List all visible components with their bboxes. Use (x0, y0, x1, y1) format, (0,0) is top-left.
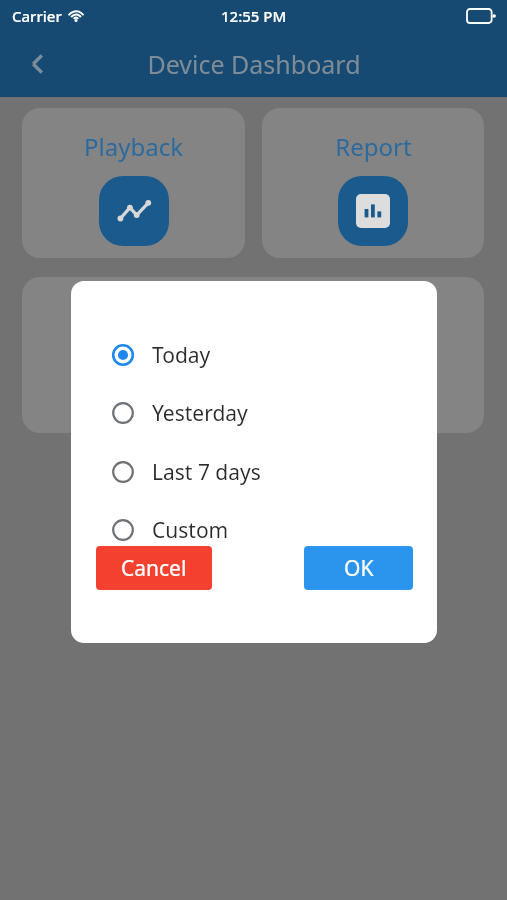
button[interactable]: Back (16, 42, 60, 86)
button[interactable]: OK (304, 546, 413, 590)
staticText: Device Dashboard (147, 47, 361, 81)
staticText: Last 7 days (152, 458, 261, 487)
button[interactable]: Last 7 days (71, 450, 437, 494)
other: Playback (117, 194, 151, 228)
button[interactable] (22, 277, 484, 433)
other: Report (356, 194, 390, 228)
staticText: Carrier (12, 6, 62, 26)
staticText: Today (152, 341, 211, 370)
staticText: 12:55 PM (221, 6, 287, 26)
staticText: OK (344, 554, 374, 583)
staticText: Yesterday (152, 399, 248, 428)
staticText: Custom (152, 516, 229, 545)
button[interactable]: Cancel (96, 546, 212, 590)
staticText: Cancel (121, 554, 187, 583)
button[interactable]: Custom (71, 508, 437, 552)
staticText: Playback (84, 130, 183, 163)
button[interactable]: Playback (22, 108, 245, 258)
button[interactable]: Today (71, 333, 437, 377)
button[interactable]: Yesterday (71, 391, 437, 435)
button[interactable]: Report (262, 108, 484, 258)
staticText: Report (335, 130, 412, 163)
